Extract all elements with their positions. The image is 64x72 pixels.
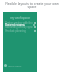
staticText: Recent rooms <box>5 23 25 27</box>
button[interactable]: Marketing weekly sync <box>3 25 37 29</box>
button[interactable]: More options <box>32 23 36 27</box>
staticText: Flexible layouts to create your own spac… <box>1 1 63 9</box>
button[interactable]: Design review with the team <box>3 21 37 25</box>
staticText: Product planning session <box>5 29 34 33</box>
button[interactable]: Add a room <box>4 64 22 67</box>
button[interactable]: Product planning session <box>3 29 37 33</box>
staticText: Add a room <box>8 64 22 67</box>
staticText: Marketing weekly sync <box>5 25 34 29</box>
staticText: my workspace <box>3 16 37 20</box>
staticText: Design review with the team <box>5 21 34 25</box>
